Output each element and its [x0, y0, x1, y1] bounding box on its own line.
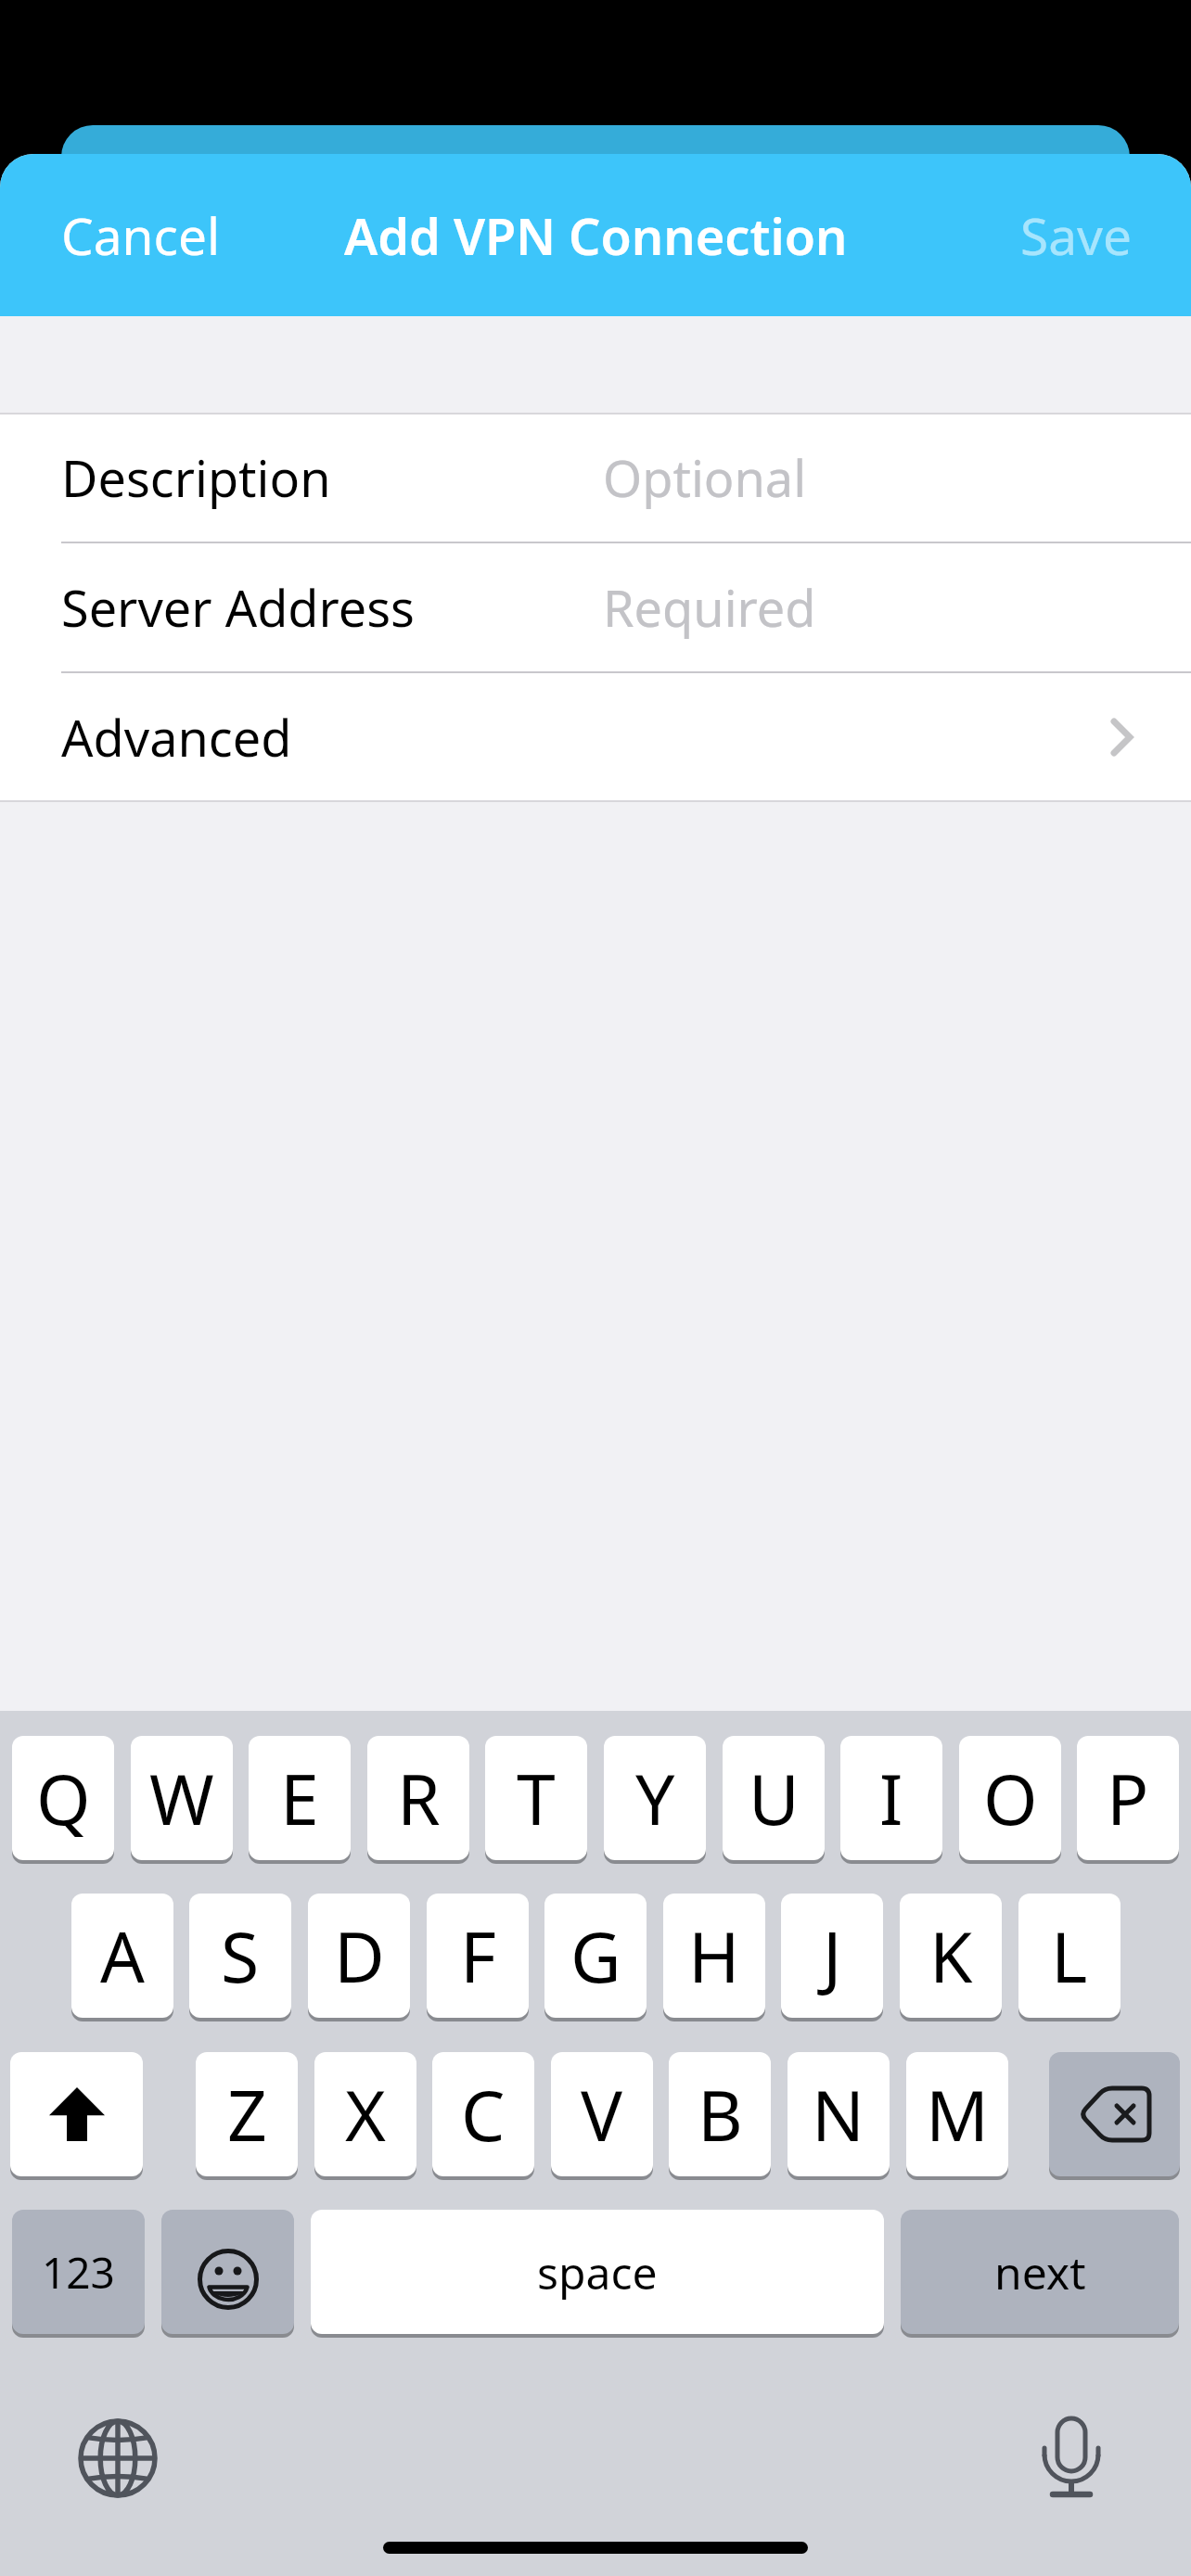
button[interactable]: F — [427, 1894, 529, 2018]
button[interactable]: M — [906, 2052, 1008, 2176]
button[interactable] — [1049, 2052, 1180, 2176]
staticText: Z — [227, 2067, 267, 2162]
staticText: Required — [603, 573, 816, 642]
staticText: K — [929, 1908, 973, 2003]
staticText: Save — [1020, 200, 1133, 270]
button[interactable]: next — [901, 2210, 1179, 2334]
staticText: J — [823, 1908, 842, 2003]
button[interactable]: space — [311, 2210, 884, 2334]
staticText: X — [345, 2067, 386, 2162]
button[interactable]: Server Address — [0, 542, 1191, 672]
staticText: Add VPN Connection — [344, 201, 848, 270]
button[interactable]: L — [1018, 1894, 1121, 2018]
button[interactable]: Q — [12, 1736, 114, 1860]
staticText: Advanced — [61, 703, 292, 772]
staticText: P — [1107, 1751, 1149, 1845]
staticText: A — [100, 1908, 145, 2003]
button[interactable]: D — [308, 1894, 410, 2018]
staticText: L — [1051, 1908, 1088, 2003]
staticText: Server Address — [61, 573, 415, 642]
button[interactable]: 123 — [12, 2210, 145, 2334]
button[interactable] — [62, 2403, 173, 2514]
button[interactable]: P — [1077, 1736, 1179, 1860]
staticText: Optional — [603, 443, 807, 512]
button[interactable]: X — [314, 2052, 416, 2176]
staticText: F — [460, 1908, 496, 2003]
staticText: O — [983, 1751, 1038, 1845]
staticText: D — [334, 1908, 385, 2003]
staticText: space — [537, 2242, 658, 2302]
staticText: W — [149, 1751, 214, 1845]
staticText: Y — [635, 1751, 675, 1845]
button[interactable]: I — [840, 1736, 942, 1860]
button[interactable]: E — [249, 1736, 351, 1860]
button[interactable]: R — [367, 1736, 469, 1860]
button[interactable]: A — [71, 1894, 173, 2018]
button[interactable]: K — [900, 1894, 1002, 2018]
staticText: N — [812, 2067, 865, 2162]
staticText: Q — [36, 1751, 91, 1845]
button[interactable]: B — [669, 2052, 771, 2176]
staticText: B — [698, 2067, 743, 2162]
button[interactable]: Cancel — [43, 200, 202, 270]
staticText: E — [280, 1751, 319, 1845]
staticText: 123 — [42, 2243, 115, 2302]
staticText: T — [517, 1751, 556, 1845]
button[interactable]: T — [485, 1736, 587, 1860]
staticText: C — [461, 2067, 506, 2162]
button[interactable] — [10, 2052, 143, 2176]
button[interactable]: J — [781, 1894, 883, 2018]
button[interactable]: Description — [0, 413, 1191, 542]
staticText: U — [749, 1751, 800, 1845]
button[interactable]: V — [551, 2052, 653, 2176]
staticText: S — [221, 1908, 260, 2003]
button[interactable]: H — [663, 1894, 765, 2018]
button[interactable]: Z — [196, 2052, 298, 2176]
staticText: V — [581, 2067, 623, 2162]
button[interactable]: G — [544, 1894, 647, 2018]
button[interactable]: O — [959, 1736, 1061, 1860]
staticText: Cancel — [61, 200, 221, 270]
button[interactable] — [1016, 2403, 1127, 2514]
button[interactable]: Y — [604, 1736, 706, 1860]
staticText: R — [397, 1751, 441, 1845]
button[interactable]: Save — [1039, 200, 1151, 270]
button[interactable]: C — [432, 2052, 534, 2176]
staticText: next — [994, 2242, 1086, 2302]
staticText: H — [688, 1908, 740, 2003]
button[interactable]: W — [131, 1736, 233, 1860]
button[interactable]: Advanced — [0, 672, 1191, 802]
staticText: I — [879, 1751, 903, 1845]
button[interactable]: N — [788, 2052, 890, 2176]
button[interactable]: U — [723, 1736, 825, 1860]
staticText: M — [926, 2067, 990, 2162]
button[interactable]: S — [189, 1894, 291, 2018]
staticText: G — [570, 1908, 621, 2003]
staticText: Description — [61, 443, 331, 512]
button[interactable] — [161, 2210, 294, 2334]
